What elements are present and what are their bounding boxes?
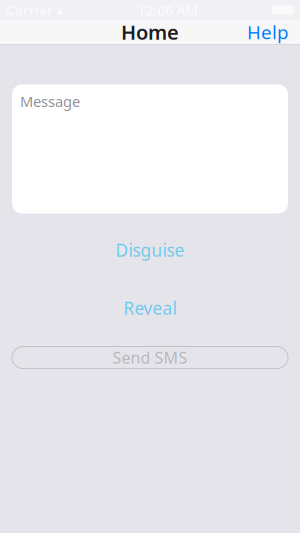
- staticText: Send SMS: [112, 347, 187, 368]
- staticText: Carrier: [6, 1, 53, 19]
- button[interactable]: Send SMS: [12, 346, 288, 368]
- staticText: Disguise: [115, 238, 184, 261]
- staticText: ▲: [56, 5, 63, 15]
- button[interactable]: Reveal: [107, 290, 192, 325]
- staticText: Message: [20, 91, 80, 111]
- button[interactable]: Disguise: [99, 232, 200, 267]
- staticText: Reveal: [123, 296, 176, 319]
- staticText: Home: [121, 19, 179, 45]
- staticText: Help: [247, 20, 288, 44]
- staticText: 12:06 AM: [137, 1, 197, 19]
- button[interactable]: Help: [239, 16, 296, 48]
